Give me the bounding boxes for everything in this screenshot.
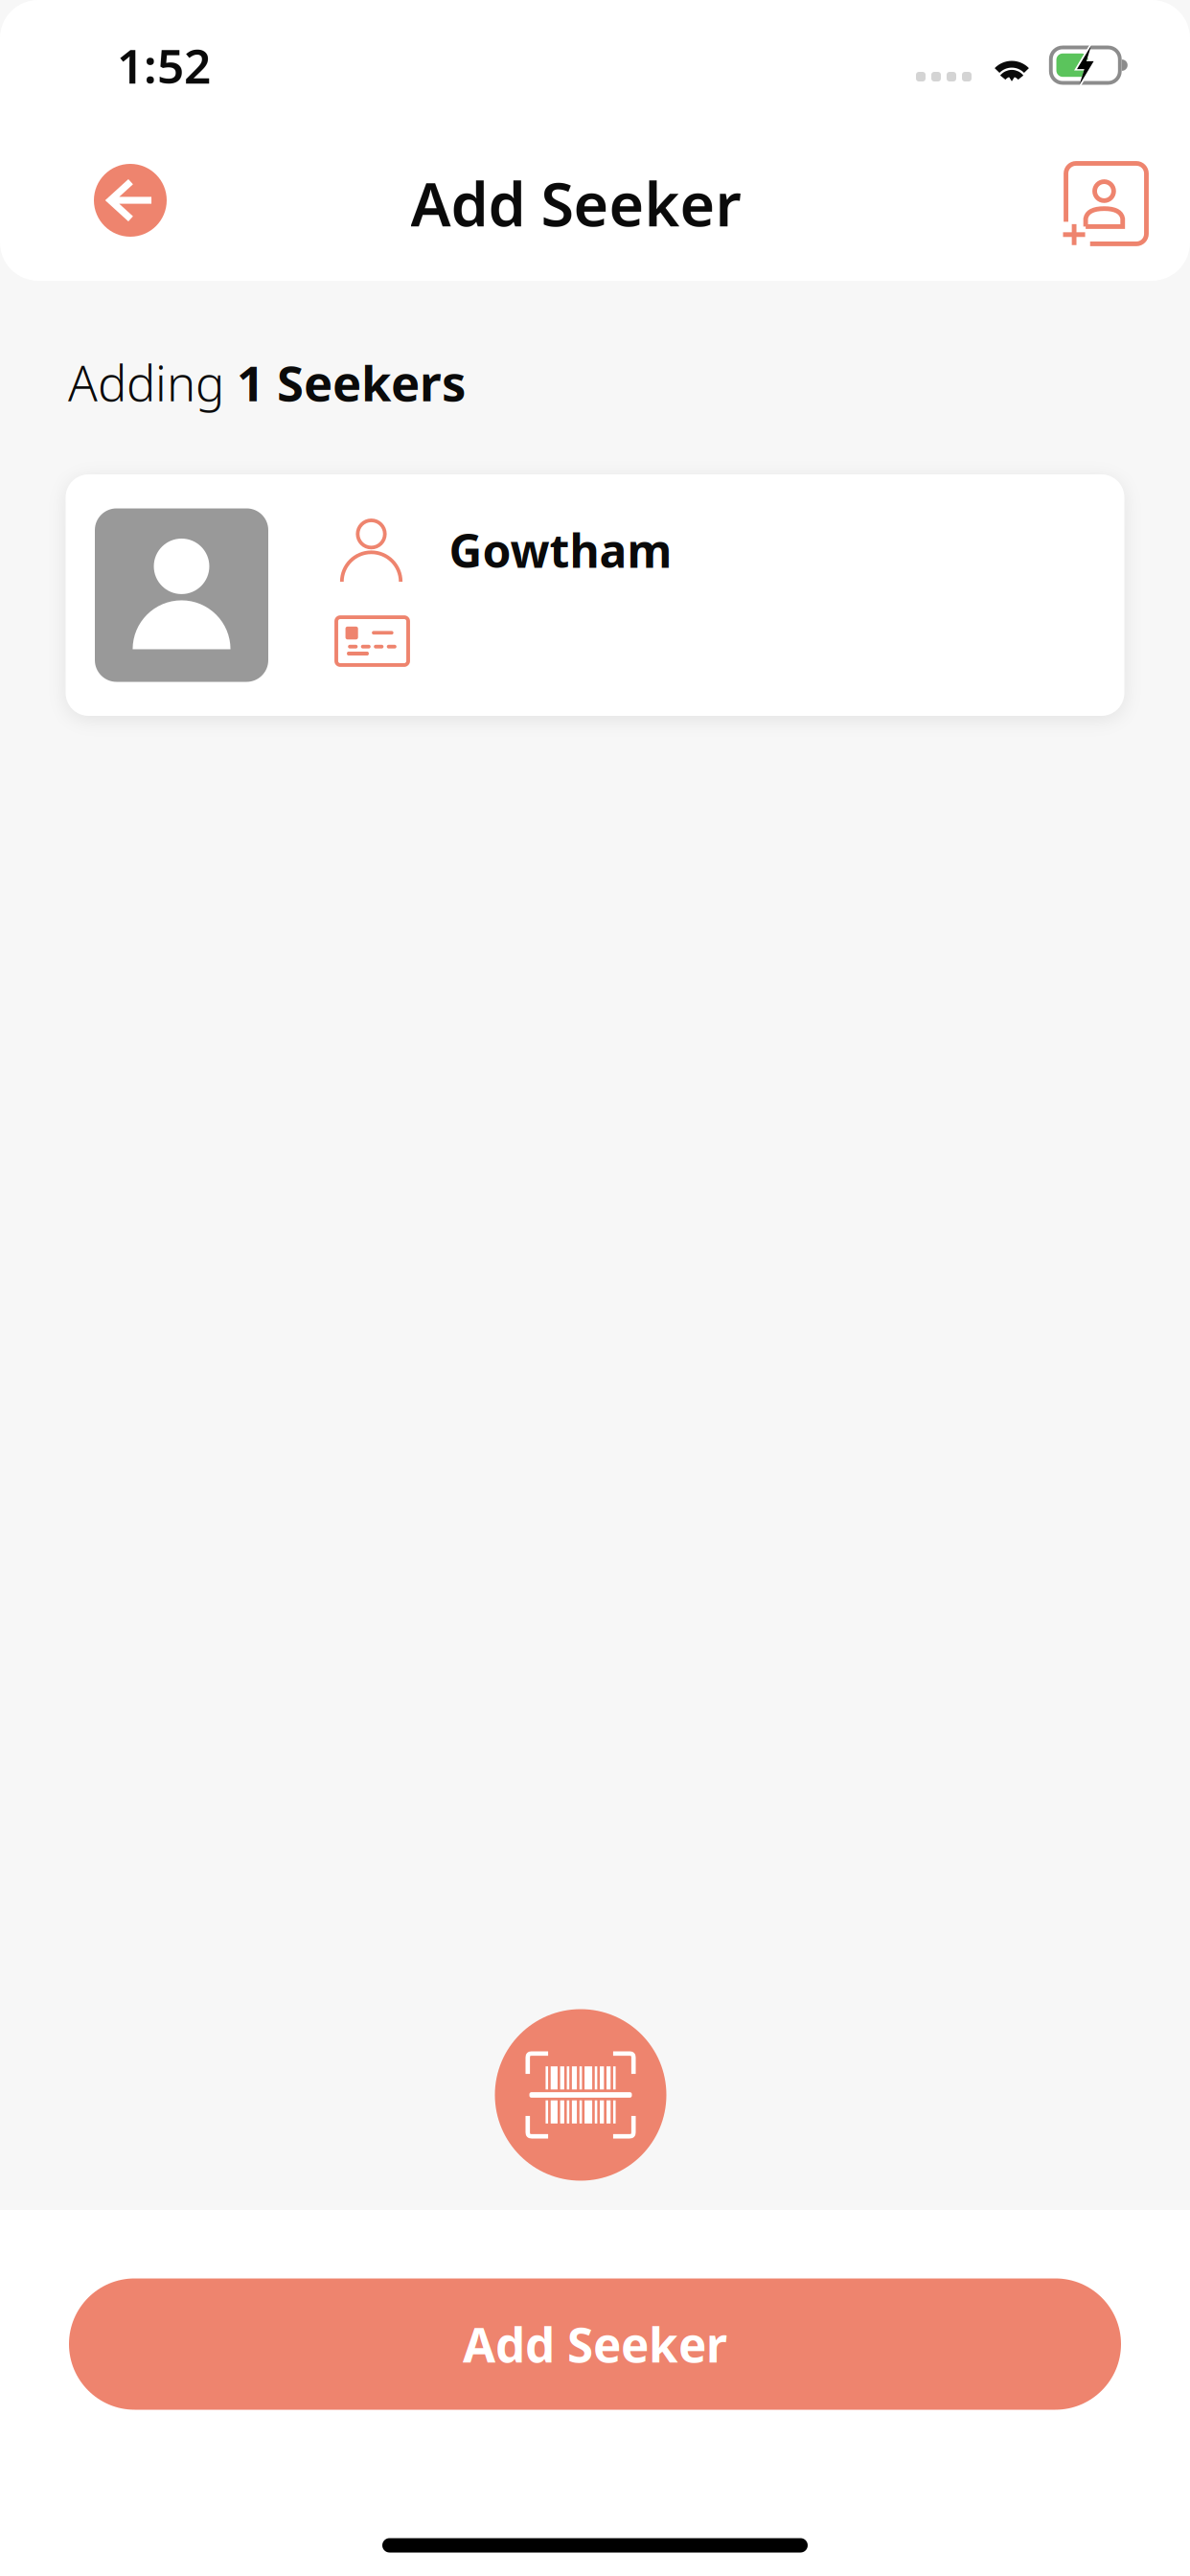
staticText: Gowtham <box>449 520 672 581</box>
button[interactable]: Add Seeker <box>69 2278 1121 2410</box>
button[interactable]: Gowtham <box>66 474 1124 716</box>
button[interactable]: Back <box>94 164 167 237</box>
staticText: Adding <box>68 350 237 415</box>
staticText: 1:52 <box>117 34 211 97</box>
staticText: Add Seeker <box>463 2313 727 2375</box>
staticText: 1 Seekers <box>237 350 466 415</box>
button[interactable]: Scan barcode <box>495 2009 666 2181</box>
staticText: Add Seeker <box>411 163 741 243</box>
button[interactable]: Add contact <box>1063 163 1146 247</box>
